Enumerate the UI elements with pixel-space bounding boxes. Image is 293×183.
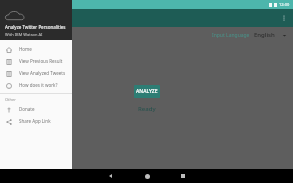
staticText: Donate xyxy=(19,106,35,112)
button[interactable]: More options xyxy=(277,11,291,25)
staticText: 12:00 xyxy=(279,2,290,7)
staticText: English xyxy=(254,31,275,39)
staticText: ANALYZE xyxy=(136,88,158,95)
staticText: Share App Link xyxy=(19,118,51,124)
button[interactable]: View Analyzed Tweets xyxy=(0,67,72,79)
staticText: View Analyzed Tweets xyxy=(19,70,66,76)
button[interactable]: Recent apps xyxy=(176,169,190,183)
button[interactable]: Back xyxy=(104,169,118,183)
button[interactable]: Donate xyxy=(0,103,72,115)
button[interactable]: English xyxy=(254,31,287,39)
button[interactable]: Home xyxy=(0,43,72,55)
staticText: Input Language xyxy=(212,32,250,39)
staticText: Ready xyxy=(138,105,156,113)
button[interactable]: Home xyxy=(140,169,154,183)
staticText: You are connected with mobile data xyxy=(104,169,189,176)
staticText: How does it work? xyxy=(19,82,58,88)
staticText: With IBM Watson AI xyxy=(5,32,43,37)
staticText: View Previous Result xyxy=(19,58,63,64)
staticText: Analyze Twitter Personalities xyxy=(5,24,66,30)
button[interactable]: View Previous Result xyxy=(0,55,72,67)
button[interactable]: How does it work? xyxy=(0,79,72,91)
staticText: Other xyxy=(5,97,16,102)
button[interactable]: Share App Link xyxy=(0,115,72,127)
button[interactable]: ANALYZE xyxy=(134,85,160,98)
staticText: Home xyxy=(19,46,32,52)
